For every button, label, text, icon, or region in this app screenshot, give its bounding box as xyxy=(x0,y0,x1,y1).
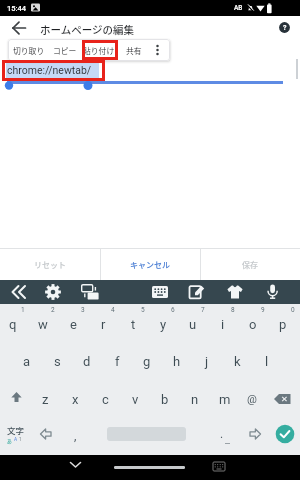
button[interactable]: p xyxy=(268,306,298,342)
button[interactable] xyxy=(45,284,61,300)
button[interactable] xyxy=(10,20,28,36)
button[interactable]: l xyxy=(252,343,282,379)
staticText: 15:44 xyxy=(7,4,27,13)
staticText: r xyxy=(101,317,106,332)
button[interactable]: コピー xyxy=(50,39,80,61)
staticText: あ xyxy=(7,437,12,444)
staticText: k xyxy=(234,354,241,369)
button[interactable] xyxy=(114,466,185,469)
staticText: . xyxy=(220,427,224,441)
staticText: v xyxy=(132,392,139,407)
button[interactable]: リセット xyxy=(0,249,100,280)
staticText: 保存 xyxy=(242,259,258,271)
button[interactable]: キャンセル xyxy=(100,249,200,280)
button[interactable]: c xyxy=(90,381,120,417)
staticText: 5 xyxy=(141,306,145,314)
staticText: q xyxy=(9,317,17,332)
button[interactable]: q xyxy=(0,306,28,342)
button[interactable] xyxy=(240,418,268,455)
staticText: 1 xyxy=(21,306,25,314)
button[interactable]: . xyxy=(207,424,237,444)
button[interactable] xyxy=(227,285,243,299)
button[interactable] xyxy=(0,381,33,417)
button[interactable]: 共有 xyxy=(120,39,148,61)
staticText: 8 xyxy=(231,306,235,314)
button[interactable] xyxy=(10,284,28,300)
button[interactable]: i xyxy=(208,306,238,342)
staticText: j xyxy=(205,354,209,369)
staticText: AB xyxy=(234,4,243,12)
button[interactable]: e xyxy=(58,306,88,342)
staticText: 9 xyxy=(261,306,265,314)
button[interactable]: 保存 xyxy=(200,249,300,280)
button[interactable]: d xyxy=(72,343,102,379)
button[interactable] xyxy=(81,284,99,300)
button[interactable] xyxy=(212,461,226,472)
staticText: 切り取り xyxy=(13,45,45,56)
button[interactable] xyxy=(189,285,205,299)
button[interactable]: k xyxy=(222,343,252,379)
button[interactable] xyxy=(150,39,165,61)
button[interactable]: b xyxy=(150,381,180,417)
button[interactable]: v xyxy=(120,381,150,417)
staticText: リセット xyxy=(34,259,66,271)
button[interactable]: 切り取り xyxy=(11,39,47,61)
button[interactable]: g xyxy=(132,343,162,379)
button[interactable]: s xyxy=(42,343,72,379)
staticText: A xyxy=(14,437,18,443)
staticText: 2 xyxy=(51,306,55,314)
button[interactable]: y xyxy=(148,306,178,342)
button[interactable]: 貼り付け xyxy=(82,39,116,61)
staticText: f xyxy=(115,354,120,369)
button[interactable]: , xyxy=(61,426,89,446)
staticText: p xyxy=(279,317,287,332)
button[interactable]: ? xyxy=(278,21,291,34)
button[interactable]: u xyxy=(178,306,208,342)
button[interactable] xyxy=(33,418,61,455)
staticText: 文字 xyxy=(7,424,25,436)
button[interactable] xyxy=(69,460,82,470)
button[interactable]: h xyxy=(162,343,192,379)
staticText: h xyxy=(173,354,181,369)
staticText: ? xyxy=(283,24,287,32)
staticText: x xyxy=(72,392,79,407)
button[interactable]: a xyxy=(12,343,42,379)
staticText: c xyxy=(102,392,109,407)
staticText: ホームページの編集 xyxy=(40,22,134,37)
button[interactable]: n xyxy=(180,381,210,417)
staticText: 3 xyxy=(81,306,85,314)
staticText: 6 xyxy=(171,306,175,314)
button[interactable] xyxy=(266,284,279,300)
button[interactable]: z xyxy=(30,381,60,417)
staticText: 4 xyxy=(111,306,115,314)
button[interactable]: j xyxy=(192,343,222,379)
staticText: l xyxy=(265,354,269,369)
button[interactable]: r xyxy=(88,306,118,342)
staticText: t xyxy=(131,317,136,332)
staticText: キャンセル xyxy=(130,259,170,271)
staticText: s xyxy=(54,354,61,369)
staticText: 共有 xyxy=(126,45,142,56)
staticText: b xyxy=(161,392,169,407)
button[interactable]: t xyxy=(118,306,148,342)
staticText: n xyxy=(191,392,199,407)
staticText: e xyxy=(70,317,77,332)
staticText: z xyxy=(42,392,49,407)
button[interactable]: f xyxy=(102,343,132,379)
staticText: 貼り付け xyxy=(83,45,115,56)
staticText: , xyxy=(74,429,77,443)
button[interactable]: w xyxy=(28,306,58,342)
staticText: y xyxy=(160,317,167,332)
button[interactable]: m xyxy=(210,381,240,417)
button[interactable] xyxy=(270,418,300,455)
button[interactable]: x xyxy=(60,381,90,417)
staticText: w xyxy=(38,317,48,332)
button[interactable]: o xyxy=(238,306,268,342)
button[interactable] xyxy=(90,418,204,455)
button[interactable]: 文字 xyxy=(0,418,33,455)
button[interactable] xyxy=(0,60,300,84)
button[interactable]: @ xyxy=(237,381,267,417)
button[interactable] xyxy=(152,285,168,299)
staticText: @ xyxy=(247,393,257,406)
button[interactable] xyxy=(267,381,300,417)
